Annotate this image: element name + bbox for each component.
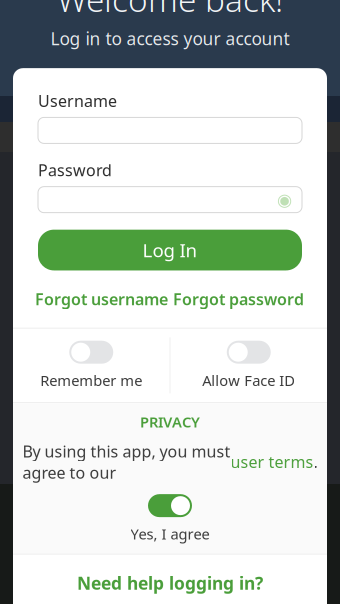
staticText: Yes, I agree	[130, 524, 209, 544]
button[interactable]: Yes, I agree	[130, 494, 209, 544]
button[interactable]: Allow Face ID	[170, 329, 327, 402]
button[interactable]: Forgot username	[33, 284, 170, 314]
staticText: Remember me	[40, 371, 142, 390]
staticText: Log In	[142, 238, 197, 262]
staticText: Username	[38, 90, 117, 111]
staticText: Password	[38, 159, 112, 181]
button[interactable]: user terms	[230, 451, 313, 472]
staticText: Forgot username	[35, 288, 168, 310]
button[interactable]: Need help logging in?	[13, 555, 327, 604]
staticText: Allow Face ID	[202, 371, 295, 390]
staticText: Log in to access your account	[50, 27, 289, 50]
staticText: user terms	[230, 451, 313, 472]
button[interactable]: Forgot password	[170, 284, 307, 314]
button[interactable]: Log In	[38, 230, 302, 270]
staticText: PRIVACY	[140, 412, 200, 432]
staticText: ◉	[277, 190, 292, 209]
staticText: .	[313, 451, 317, 472]
staticText: Welcome back!	[57, 0, 283, 21]
button[interactable]: Remember me	[13, 329, 169, 402]
staticText: Forgot password	[173, 288, 304, 310]
staticText: Need help logging in?	[77, 572, 263, 595]
staticText: By using this app, you must agree to our	[22, 441, 230, 483]
